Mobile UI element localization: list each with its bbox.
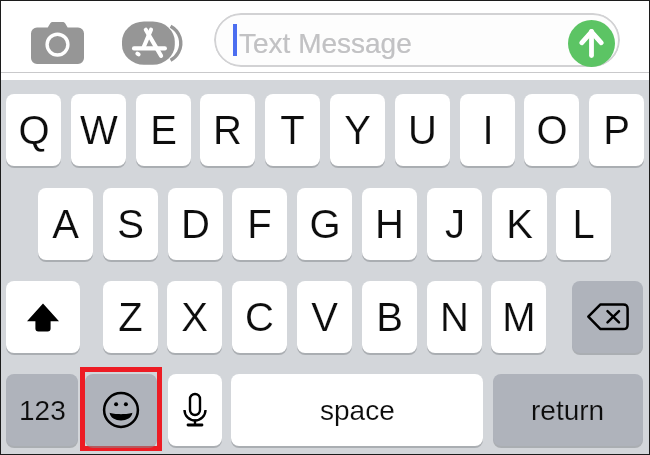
button[interactable]: T	[265, 94, 320, 166]
button[interactable]: J	[427, 188, 482, 260]
button[interactable]: P	[589, 94, 644, 166]
staticText: P	[603, 108, 630, 153]
staticText: C	[245, 295, 274, 340]
button[interactable]: Z	[103, 281, 158, 353]
staticText: return	[531, 395, 605, 426]
button[interactable]: F	[232, 188, 287, 260]
button[interactable]: Backspace	[572, 281, 643, 353]
staticText: Q	[18, 108, 50, 153]
button[interactable]: V	[297, 281, 352, 353]
button[interactable]: Numbers	[6, 374, 78, 446]
button[interactable]: Text Message	[214, 13, 620, 67]
button[interactable]: A	[38, 188, 93, 260]
button[interactable]: return	[493, 374, 643, 446]
staticText: F	[247, 202, 272, 247]
button[interactable]: Y	[330, 94, 385, 166]
button[interactable]: D	[168, 188, 223, 260]
staticText: J	[445, 202, 465, 247]
staticText: B	[376, 295, 403, 340]
staticText: D	[181, 202, 210, 247]
button[interactable]: R	[200, 94, 255, 166]
staticText: space	[320, 395, 395, 426]
button[interactable]: N	[427, 281, 482, 353]
button[interactable]: B	[362, 281, 417, 353]
button[interactable]: W	[71, 94, 126, 166]
staticText: R	[213, 108, 242, 153]
button[interactable]: M	[491, 281, 546, 353]
button[interactable]: Q	[6, 94, 61, 166]
staticText: S	[117, 202, 144, 247]
button[interactable]: Shift	[6, 281, 80, 353]
button[interactable]: H	[362, 188, 417, 260]
staticText: E	[150, 108, 177, 153]
staticText: A	[52, 202, 79, 247]
staticText: M	[502, 295, 536, 340]
staticText: L	[572, 202, 595, 247]
button[interactable]: Send	[568, 20, 615, 67]
staticText: Z	[118, 295, 143, 340]
button[interactable]: X	[167, 281, 222, 353]
button[interactable]: U	[395, 94, 450, 166]
button[interactable]: I	[460, 94, 515, 166]
button[interactable]: O	[524, 94, 579, 166]
button[interactable]: C	[232, 281, 287, 353]
staticText: H	[375, 202, 404, 247]
button[interactable]: Emoji	[85, 374, 157, 446]
button[interactable]: Dictate	[168, 374, 222, 446]
button[interactable]: App Store	[118, 18, 184, 68]
button[interactable]: K	[492, 188, 547, 260]
button[interactable]: Take photo	[24, 16, 90, 66]
staticText: W	[80, 108, 118, 153]
staticText: G	[309, 202, 341, 247]
staticText: Text Message	[239, 28, 412, 59]
button[interactable]: E	[136, 94, 191, 166]
staticText: N	[440, 295, 469, 340]
button[interactable]: S	[103, 188, 158, 260]
staticText: U	[408, 108, 437, 153]
button[interactable]: L	[556, 188, 611, 260]
staticText: T	[280, 108, 305, 153]
staticText: V	[311, 295, 338, 340]
staticText: K	[506, 202, 533, 247]
button[interactable]: space	[231, 374, 483, 446]
staticText: O	[536, 108, 568, 153]
staticText: 123	[19, 395, 66, 426]
staticText: Y	[344, 108, 371, 153]
staticText: X	[181, 295, 208, 340]
button[interactable]: G	[297, 188, 352, 260]
staticText: I	[482, 108, 494, 153]
